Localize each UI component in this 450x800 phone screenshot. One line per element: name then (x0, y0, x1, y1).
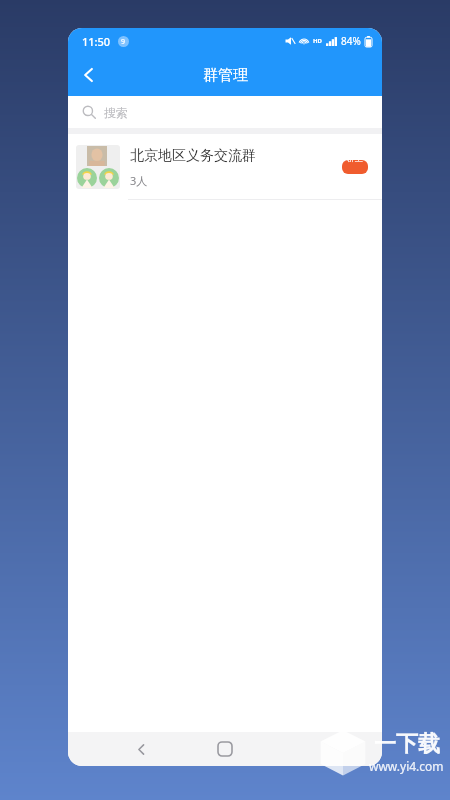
button[interactable]: Home (208, 732, 242, 766)
staticText: 11:50 (82, 34, 111, 49)
staticText: 群管理 (203, 66, 248, 85)
button[interactable]: 搜索 (68, 96, 382, 128)
staticText: 3人 (130, 173, 148, 188)
staticText: 一下载 (374, 730, 440, 758)
button[interactable]: Back (124, 732, 158, 766)
staticText: 群主 (347, 160, 363, 163)
button[interactable]: 北京地区义务交流群 (68, 134, 382, 200)
staticText: HD (313, 37, 322, 45)
staticText: 9 (121, 37, 126, 47)
staticText: 搜索 (104, 105, 128, 120)
button[interactable]: Back (68, 54, 110, 96)
staticText: 北京地区义务交流群 (130, 147, 256, 165)
staticText: 84% (341, 34, 361, 48)
staticText: www.yi4.com (369, 758, 444, 774)
